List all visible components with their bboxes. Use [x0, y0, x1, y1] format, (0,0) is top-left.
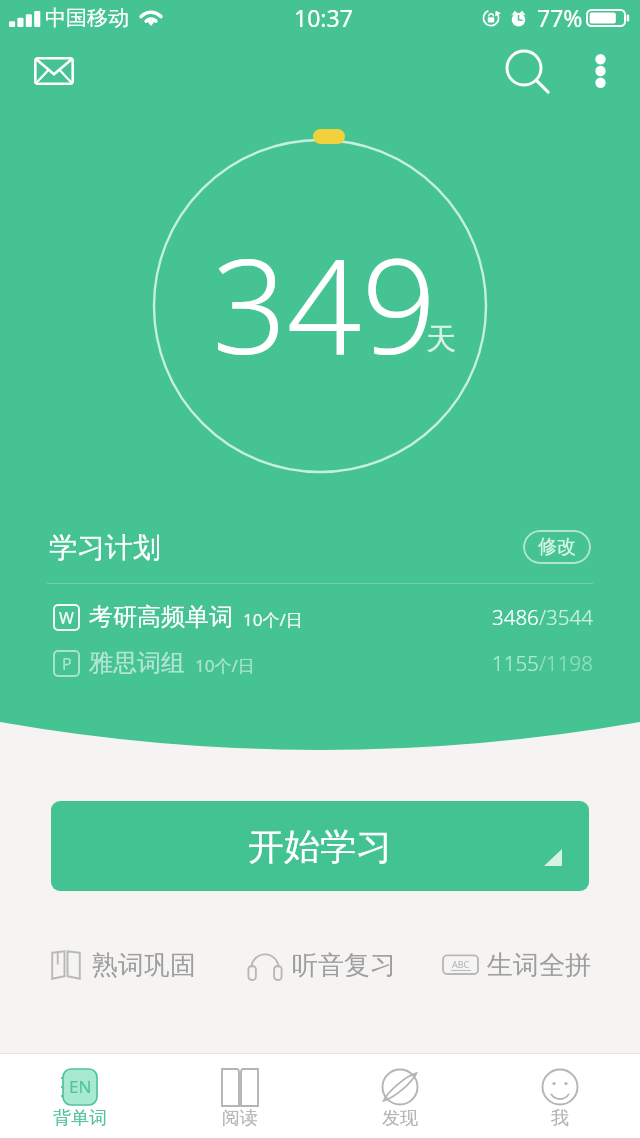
- button[interactable]: 修改: [523, 530, 591, 564]
- staticText: 听音复习: [292, 949, 396, 981]
- staticText: 10个/日: [195, 654, 255, 677]
- staticText: 3486: [492, 603, 539, 631]
- staticText: 77%: [537, 2, 583, 33]
- staticText: 学习计划: [49, 530, 161, 565]
- staticText: 10:37: [294, 2, 353, 33]
- staticText: 阅读: [222, 1107, 258, 1130]
- button[interactable]: 阅读: [160, 1054, 320, 1138]
- staticText: /1198: [539, 649, 593, 677]
- staticText: 开始学习: [248, 824, 392, 869]
- staticText: 熟词巩固: [92, 949, 196, 981]
- staticText: 1155: [492, 649, 539, 677]
- button[interactable]: P: [47, 641, 593, 685]
- button[interactable]: More options: [575, 46, 625, 96]
- staticText: 修改: [538, 535, 576, 559]
- button[interactable]: 发现: [320, 1054, 480, 1138]
- staticText: 天: [426, 320, 456, 358]
- button[interactable]: 熟词巩固: [51, 949, 196, 981]
- staticText: 我: [551, 1107, 569, 1130]
- button[interactable]: 我: [480, 1054, 640, 1138]
- button[interactable]: Search: [496, 40, 556, 100]
- staticText: 发现: [382, 1107, 418, 1130]
- staticText: 10个/日: [243, 608, 303, 631]
- button[interactable]: 听音复习: [248, 949, 396, 981]
- staticText: 中国移动: [45, 5, 129, 31]
- button[interactable]: W: [47, 595, 593, 639]
- button[interactable]: EN: [0, 1054, 160, 1138]
- staticText: P: [62, 653, 72, 675]
- staticText: EN: [69, 1075, 92, 1098]
- staticText: 349: [212, 214, 437, 392]
- button[interactable]: Messages: [24, 47, 84, 95]
- staticText: W: [59, 607, 74, 629]
- button[interactable]: 开始学习: [51, 801, 589, 891]
- staticText: 雅思词组: [89, 648, 185, 678]
- button[interactable]: ABC: [442, 949, 591, 981]
- staticText: /3544: [539, 603, 593, 631]
- staticText: 考研高频单词: [89, 602, 233, 632]
- staticText: 生词全拼: [487, 949, 591, 981]
- staticText: 背单词: [53, 1107, 107, 1130]
- staticText: ABC: [452, 958, 470, 970]
